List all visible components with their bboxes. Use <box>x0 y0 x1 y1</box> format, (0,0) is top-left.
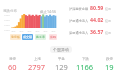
button[interactable]: 涨停板 <box>10 34 21 40</box>
button[interactable]: 换手率 <box>35 34 46 40</box>
button[interactable]: 跌停 <box>97 57 121 72</box>
staticText: 36.57 <box>90 28 104 35</box>
staticText: 上涨 <box>34 57 41 61</box>
staticText: 跌停 <box>106 57 113 61</box>
staticText: 深股通净流入 <box>69 31 89 35</box>
button[interactable]: 沪股通净流入 <box>69 16 111 23</box>
staticText: 沪股通净流入 <box>69 19 89 23</box>
staticText: -5% <box>43 29 48 32</box>
staticText: -5% <box>19 29 24 32</box>
staticText: 亿元 <box>105 7 111 11</box>
staticText: 换手率 <box>36 35 45 39</box>
staticText: 1000 <box>4 13 10 16</box>
staticText: 亿元 <box>105 31 111 35</box>
staticText: 涨停 <box>9 57 16 61</box>
button[interactable]: 沪深融资余额 <box>69 4 111 11</box>
button[interactable]: 深股通净流入 <box>69 28 111 35</box>
staticText: 振幅 <box>50 35 56 39</box>
staticText: 80.59 <box>90 4 104 11</box>
staticText: 沪深融资余额 <box>69 7 89 11</box>
staticText: 60 <box>8 62 17 72</box>
staticText: 平盘 <box>58 57 65 61</box>
button[interactable]: 个股异动 <box>50 46 72 53</box>
staticText: 129 <box>55 62 68 72</box>
staticText: 1000 <box>4 18 10 21</box>
staticText: 亿元 <box>105 19 111 23</box>
staticText: 19 <box>105 62 114 72</box>
staticText: 成交额 <box>23 35 32 39</box>
staticText: 个股异动 <box>53 47 69 52</box>
button[interactable]: 振幅 <box>49 34 57 40</box>
staticText: 1000 <box>4 23 10 26</box>
staticText: 涨停板 <box>11 35 20 39</box>
staticText: -5% <box>27 29 32 32</box>
button[interactable]: 上涨 <box>25 57 49 72</box>
staticText: 1000 <box>4 28 10 31</box>
staticText: 截止14:56 <box>40 9 56 14</box>
staticText: -5% <box>51 29 56 32</box>
staticText: -5% <box>35 29 40 32</box>
button[interactable]: 平盘 <box>49 57 73 72</box>
staticText: 1166 <box>76 62 94 72</box>
staticText: 44.02 <box>90 16 104 23</box>
staticText: 2797 <box>28 62 46 72</box>
staticText: 涨跌分布 <box>3 9 17 13</box>
button[interactable]: 成交额 <box>22 34 33 40</box>
button[interactable]: 下跌 <box>73 57 97 72</box>
button[interactable]: 涨停 <box>0 57 25 72</box>
staticText: -5% <box>11 29 16 32</box>
staticText: 下跌 <box>82 57 89 61</box>
